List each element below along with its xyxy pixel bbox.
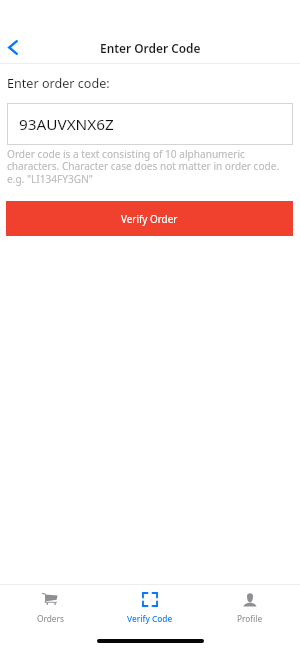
button[interactable]: Verify Code [100, 585, 200, 629]
staticText: Profile [237, 613, 263, 624]
button[interactable]: Verify Order [6, 201, 293, 236]
staticText: Verify Order [121, 212, 178, 225]
staticText: Order code is a text consisting of 10 al… [7, 147, 280, 186]
button[interactable]: 93AUVXNX6Z [7, 103, 293, 145]
button[interactable]: Back [0, 29, 31, 65]
staticText: Verify Code [127, 613, 173, 624]
staticText: Orders [37, 613, 64, 624]
staticText: Enter Order Code [100, 40, 201, 56]
button[interactable]: Profile [200, 585, 300, 629]
staticText: 93AUVXNX6Z [19, 114, 114, 135]
staticText: Enter order code: [7, 75, 110, 92]
button[interactable]: Orders [0, 585, 100, 629]
